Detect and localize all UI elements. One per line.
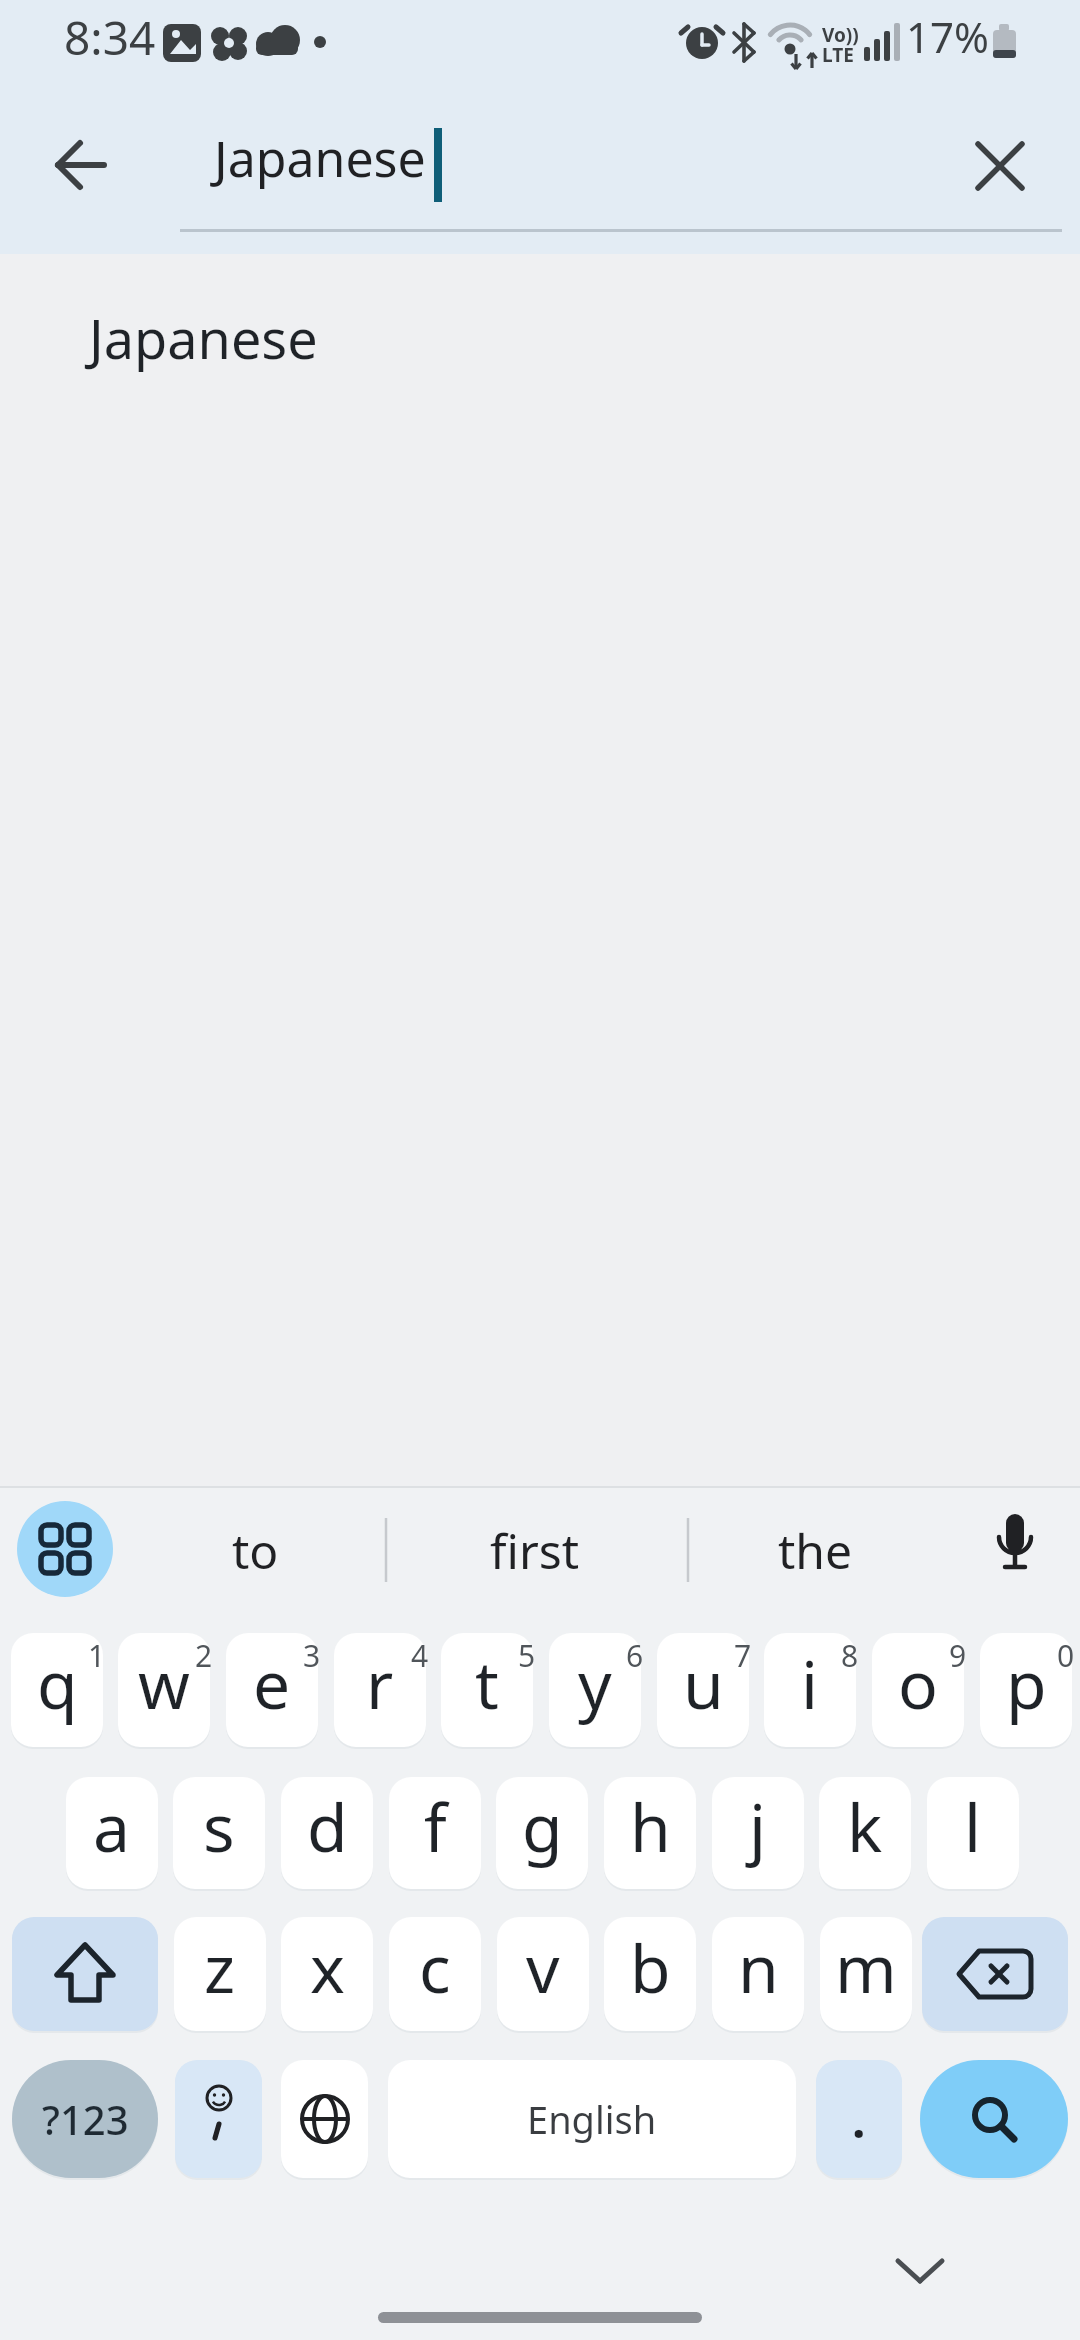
button[interactable]: [975, 1509, 1055, 1589]
staticText: Vo)): [822, 22, 859, 48]
button[interactable]: English: [388, 2060, 796, 2178]
button[interactable]: f: [389, 1777, 481, 1889]
staticText: Japanese: [214, 124, 426, 192]
staticText: w: [138, 1638, 190, 1728]
button[interactable]: [17, 1501, 113, 1597]
button[interactable]: c: [389, 1917, 481, 2031]
staticText: Japanese: [89, 301, 318, 375]
button[interactable]: [226, 1633, 318, 1747]
staticText: k: [847, 1781, 883, 1871]
staticText: LTE: [822, 42, 854, 68]
button[interactable]: d: [281, 1777, 373, 1889]
button[interactable]: [118, 1633, 210, 1747]
button[interactable]: [980, 1633, 1072, 1747]
staticText: 1: [88, 1635, 106, 1675]
staticText: 9: [949, 1635, 967, 1675]
staticText: 4: [411, 1635, 429, 1675]
button[interactable]: z: [174, 1917, 266, 2031]
staticText: z: [204, 1922, 236, 2012]
staticText: m: [835, 1922, 897, 2012]
staticText: o: [898, 1638, 938, 1728]
staticText: 2: [195, 1635, 213, 1675]
staticText: n: [738, 1922, 779, 2012]
button[interactable]: Japanese: [40, 288, 540, 388]
staticText: 5: [518, 1635, 536, 1675]
staticText: v: [526, 1922, 560, 2012]
staticText: i: [801, 1638, 819, 1728]
staticText: f: [424, 1781, 447, 1871]
staticText: 17%: [906, 8, 989, 65]
button[interactable]: b: [604, 1917, 696, 2031]
button[interactable]: [281, 2060, 368, 2178]
staticText: u: [683, 1638, 724, 1728]
staticText: s: [203, 1781, 235, 1871]
button[interactable]: [12, 1917, 158, 2031]
staticText: 7: [734, 1635, 752, 1675]
staticText: 8: [841, 1635, 859, 1675]
staticText: r: [366, 1638, 394, 1728]
button[interactable]: [334, 1633, 426, 1747]
staticText: j: [749, 1781, 767, 1871]
staticText: .: [852, 2087, 866, 2152]
staticText: 0: [1057, 1635, 1075, 1675]
button[interactable]: [960, 126, 1040, 206]
button[interactable]: [441, 1633, 533, 1747]
button[interactable]: m: [820, 1917, 912, 2031]
staticText: 8:34: [64, 6, 156, 69]
button[interactable]: h: [604, 1777, 696, 1889]
staticText: English: [527, 2093, 657, 2145]
button[interactable]: a: [66, 1777, 158, 1889]
button[interactable]: the: [720, 1505, 910, 1595]
staticText: c: [419, 1922, 451, 2012]
staticText: d: [307, 1781, 348, 1871]
button[interactable]: s: [173, 1777, 265, 1889]
button[interactable]: [40, 125, 120, 205]
button[interactable]: .: [816, 2060, 902, 2178]
button[interactable]: [922, 1917, 1068, 2031]
button[interactable]: [872, 1633, 964, 1747]
staticText: h: [630, 1781, 671, 1871]
staticText: 3: [303, 1635, 321, 1675]
staticText: to: [232, 1518, 279, 1583]
button[interactable]: [175, 2060, 262, 2178]
staticText: 6: [626, 1635, 644, 1675]
staticText: l: [964, 1781, 982, 1871]
button[interactable]: [11, 1633, 103, 1747]
button[interactable]: to: [160, 1505, 350, 1595]
button[interactable]: [549, 1633, 641, 1747]
staticText: q: [37, 1638, 78, 1728]
staticText: x: [310, 1922, 345, 2012]
staticText: p: [1006, 1638, 1047, 1728]
button[interactable]: first: [440, 1505, 630, 1595]
button[interactable]: ?123: [12, 2060, 158, 2178]
staticText: y: [578, 1638, 612, 1728]
staticText: g: [522, 1781, 563, 1871]
button[interactable]: [920, 2060, 1068, 2178]
button[interactable]: g: [496, 1777, 588, 1889]
button[interactable]: v: [497, 1917, 589, 2031]
staticText: e: [253, 1638, 291, 1728]
staticText: first: [490, 1518, 580, 1583]
staticText: b: [630, 1922, 671, 2012]
button[interactable]: x: [281, 1917, 373, 2031]
button[interactable]: l: [927, 1777, 1019, 1889]
staticText: ?123: [42, 2092, 129, 2146]
staticText: the: [778, 1518, 853, 1583]
button[interactable]: k: [819, 1777, 911, 1889]
button[interactable]: [880, 2235, 960, 2299]
button[interactable]: j: [712, 1777, 804, 1889]
staticText: t: [475, 1638, 499, 1728]
button[interactable]: [657, 1633, 749, 1747]
button[interactable]: n: [712, 1917, 804, 2031]
staticText: a: [93, 1781, 131, 1871]
button[interactable]: [764, 1633, 856, 1747]
